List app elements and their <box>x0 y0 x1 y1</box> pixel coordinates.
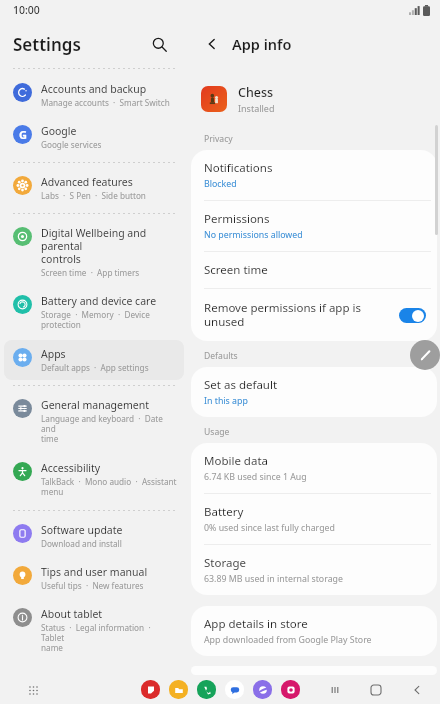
button[interactable]: msg <box>225 680 244 699</box>
staticText: Tips and user manual <box>41 565 148 579</box>
staticText: Labs · S Pen · Side button <box>41 190 146 201</box>
staticText: Mobile data <box>204 453 268 469</box>
button[interactable]: Home <box>367 681 385 699</box>
staticText: Advanced features <box>41 175 133 189</box>
button[interactable]: Accessibility <box>4 454 184 505</box>
staticText: Accounts and backup <box>41 82 147 96</box>
button[interactable]: Tips and user manual <box>4 558 184 598</box>
staticText: TalkBack · Mono audio · Assistant menu <box>41 476 177 498</box>
staticText: App details in store <box>204 616 308 632</box>
staticText: 0% used since last fully charged <box>204 522 335 534</box>
button[interactable]: net <box>253 680 272 699</box>
staticText: Defaults <box>204 350 238 362</box>
staticText: Apps <box>41 347 66 361</box>
button[interactable]: Remove permissions if app is unused <box>191 289 437 341</box>
staticText: G <box>19 127 27 142</box>
staticText: General management <box>41 398 149 412</box>
staticText: Set as default <box>204 377 278 393</box>
button[interactable]: General management <box>4 391 184 452</box>
staticText: No permissions allowed <box>204 229 303 241</box>
staticText: Useful tips · New features <box>41 580 144 591</box>
button[interactable]: Advanced features <box>4 168 184 208</box>
staticText: App info <box>232 34 292 54</box>
staticText: Accessibility <box>41 461 101 475</box>
button[interactable]: App details in store <box>191 606 437 656</box>
button[interactable]: All apps <box>23 680 43 700</box>
button[interactable]: Mobile data <box>191 443 437 493</box>
staticText: Default apps · App settings <box>41 362 149 373</box>
staticText: Blocked <box>204 178 237 190</box>
staticText: About tablet <box>41 607 103 621</box>
button[interactable]: Storage <box>191 545 437 595</box>
staticText: 10:00 <box>13 3 40 17</box>
staticText: Google services <box>41 139 102 150</box>
button[interactable]: Software update <box>4 516 184 556</box>
staticText: Software update <box>41 523 123 537</box>
button[interactable]: Notifications <box>191 150 437 200</box>
button[interactable]: Screen time <box>191 252 437 288</box>
staticText: Settings <box>13 33 81 56</box>
button[interactable]: Battery and device care <box>4 287 184 338</box>
button[interactable]: Set as default <box>191 367 437 417</box>
button[interactable]: cam <box>281 680 300 699</box>
staticText: Installed <box>238 102 275 114</box>
button[interactable]: Back <box>408 681 426 699</box>
button[interactable]: notes <box>141 680 160 699</box>
button[interactable]: files <box>169 680 188 699</box>
staticText: Remove permissions if app is unused <box>204 300 399 330</box>
staticText: In this app <box>204 395 248 407</box>
staticText: 6.74 KB used since 1 Aug <box>204 471 307 483</box>
staticText: 63.89 MB used in internal storage <box>204 573 343 585</box>
staticText: Privacy <box>204 133 233 145</box>
button[interactable]: Edit <box>410 340 440 370</box>
button[interactable]: Search <box>146 31 172 57</box>
staticText: Screen time · App timers <box>41 267 140 278</box>
button[interactable]: Digital Wellbeing and parental controls <box>4 219 184 285</box>
staticText: Language and keyboard · Date and time <box>41 413 178 445</box>
staticText: Notifications <box>204 160 273 176</box>
button[interactable]: Back <box>199 31 225 57</box>
staticText: Permissions <box>204 211 270 227</box>
staticText: Battery and device care <box>41 294 157 308</box>
staticText: Manage accounts · Smart Switch <box>41 97 170 108</box>
button[interactable]: G <box>4 117 184 157</box>
staticText: Usage <box>204 426 230 438</box>
staticText: Chess <box>238 84 274 101</box>
button[interactable]: Chess <box>201 84 440 114</box>
button[interactable]: Recents <box>326 681 344 699</box>
staticText: App downloaded from Google Play Store <box>204 634 372 646</box>
staticText: Storage <box>204 555 246 571</box>
staticText: Battery <box>204 504 244 520</box>
button[interactable]: About tablet <box>4 600 184 661</box>
staticText: Download and install <box>41 538 122 549</box>
button[interactable]: phone <box>197 680 216 699</box>
staticText: Status · Legal information · Tablet name <box>41 622 178 654</box>
button[interactable]: Battery <box>191 494 437 544</box>
button[interactable]: Apps <box>4 340 184 380</box>
button[interactable]: Accounts and backup <box>4 75 184 115</box>
staticText: Screen time <box>204 262 268 278</box>
button[interactable]: Permissions <box>191 201 437 251</box>
staticText: Digital Wellbeing and parental controls <box>41 226 178 266</box>
staticText: Google <box>41 124 77 138</box>
staticText: Storage · Memory · Device protection <box>41 309 150 331</box>
